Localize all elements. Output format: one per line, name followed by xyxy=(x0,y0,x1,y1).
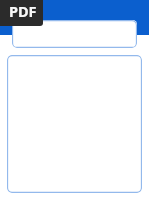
button[interactable]: PDF file type xyxy=(0,0,43,26)
button[interactable]: Page 2 xyxy=(7,55,142,193)
button[interactable]: Page 1 xyxy=(12,20,137,48)
staticText: PDF xyxy=(9,1,37,21)
